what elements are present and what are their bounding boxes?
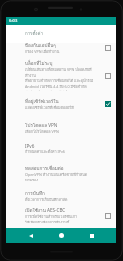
staticText: การบันทึก: [25, 190, 45, 197]
button[interactable]: บล็อกที่ไม่ระบุ: [102, 70, 113, 81]
staticText: กำหนดค่าและตั้งค่า IPv6: [25, 149, 65, 154]
staticText: ข้อจำกัดในการทำงานได้ปกติ: [25, 90, 72, 91]
button[interactable]: เปิดใช้งาน AES-CBC: [102, 210, 113, 221]
button[interactable]: IPv6: [6, 143, 116, 154]
staticText: เปลี่ยนเส้นทางทั้งหมดผ่าน VPN ปลอดภัยที่…: [25, 67, 101, 78]
button[interactable]: ที่อยู่เซิร์ฟเวอร์ใน: [102, 98, 113, 109]
button[interactable]: ทดสอบการเชื่อมต่อ: [6, 165, 116, 181]
staticText: Android เวอร์ชัน 4.4 ถึง 6.0 มีข้อจำกัด: [25, 84, 87, 90]
button[interactable]: ที่อยู่เซิร์ฟเวอร์ใน: [6, 98, 116, 109]
staticText: บกพร่อง: [25, 178, 38, 181]
button[interactable]: โปรโตคอล VPN: [6, 122, 116, 133]
staticText: ป้องกันแอปอื่นๆ: [25, 42, 56, 49]
staticText: เลือกโปรโตคอล VPN: [25, 129, 59, 133]
staticText: การเปิดใช้งานสำหรับเวอร์ชันเก่า: [25, 214, 78, 220]
button[interactable]: การบันทึก: [6, 190, 116, 201]
button[interactable]: บล็อกที่ไม่ระบุ: [6, 60, 116, 91]
staticText: ที่พยายามจำกัดการเชื่อมต่อได้ และอุปกรณ์: [25, 78, 93, 84]
staticText: โปรโตคอล VPN: [25, 122, 58, 129]
staticText: OpenVPN ทำงานบนเครือข่ายที่กำหนด: [25, 172, 88, 178]
staticText: แสดงเซิร์ฟเวอร์ที่เชื่อมต่ออยู่ให้: [25, 105, 74, 109]
staticText: 6:03: [9, 18, 18, 24]
staticText: ตั้งเวลาการเก็บบันทึกล่าสุด: [25, 197, 68, 201]
button[interactable]: Back: [24, 229, 37, 242]
staticText: การตั้งค่า: [25, 30, 43, 37]
staticText: ให้เลือกตัวเลือกการทำงานนี้: [25, 220, 70, 223]
staticText: ทดสอบการเชื่อมต่อ: [25, 165, 64, 172]
staticText: กรอง VPN เมื่อทำงาน: [25, 49, 60, 53]
staticText: บล็อกที่ไม่ระบุ: [25, 60, 53, 67]
button[interactable]: Recent apps: [85, 229, 98, 242]
staticText: ที่อยู่เซิร์ฟเวอร์ใน: [25, 98, 59, 105]
staticText: เปิดใช้งาน AES-CBC: [25, 207, 66, 214]
button[interactable]: Home: [55, 229, 68, 242]
button[interactable]: ป้องกันแอปอื่นๆ: [102, 42, 113, 53]
staticText: IPv6: [25, 143, 35, 149]
button[interactable]: ป้องกันแอปอื่นๆ: [6, 42, 116, 53]
button[interactable]: เปิดใช้งาน AES-CBC: [6, 207, 116, 223]
